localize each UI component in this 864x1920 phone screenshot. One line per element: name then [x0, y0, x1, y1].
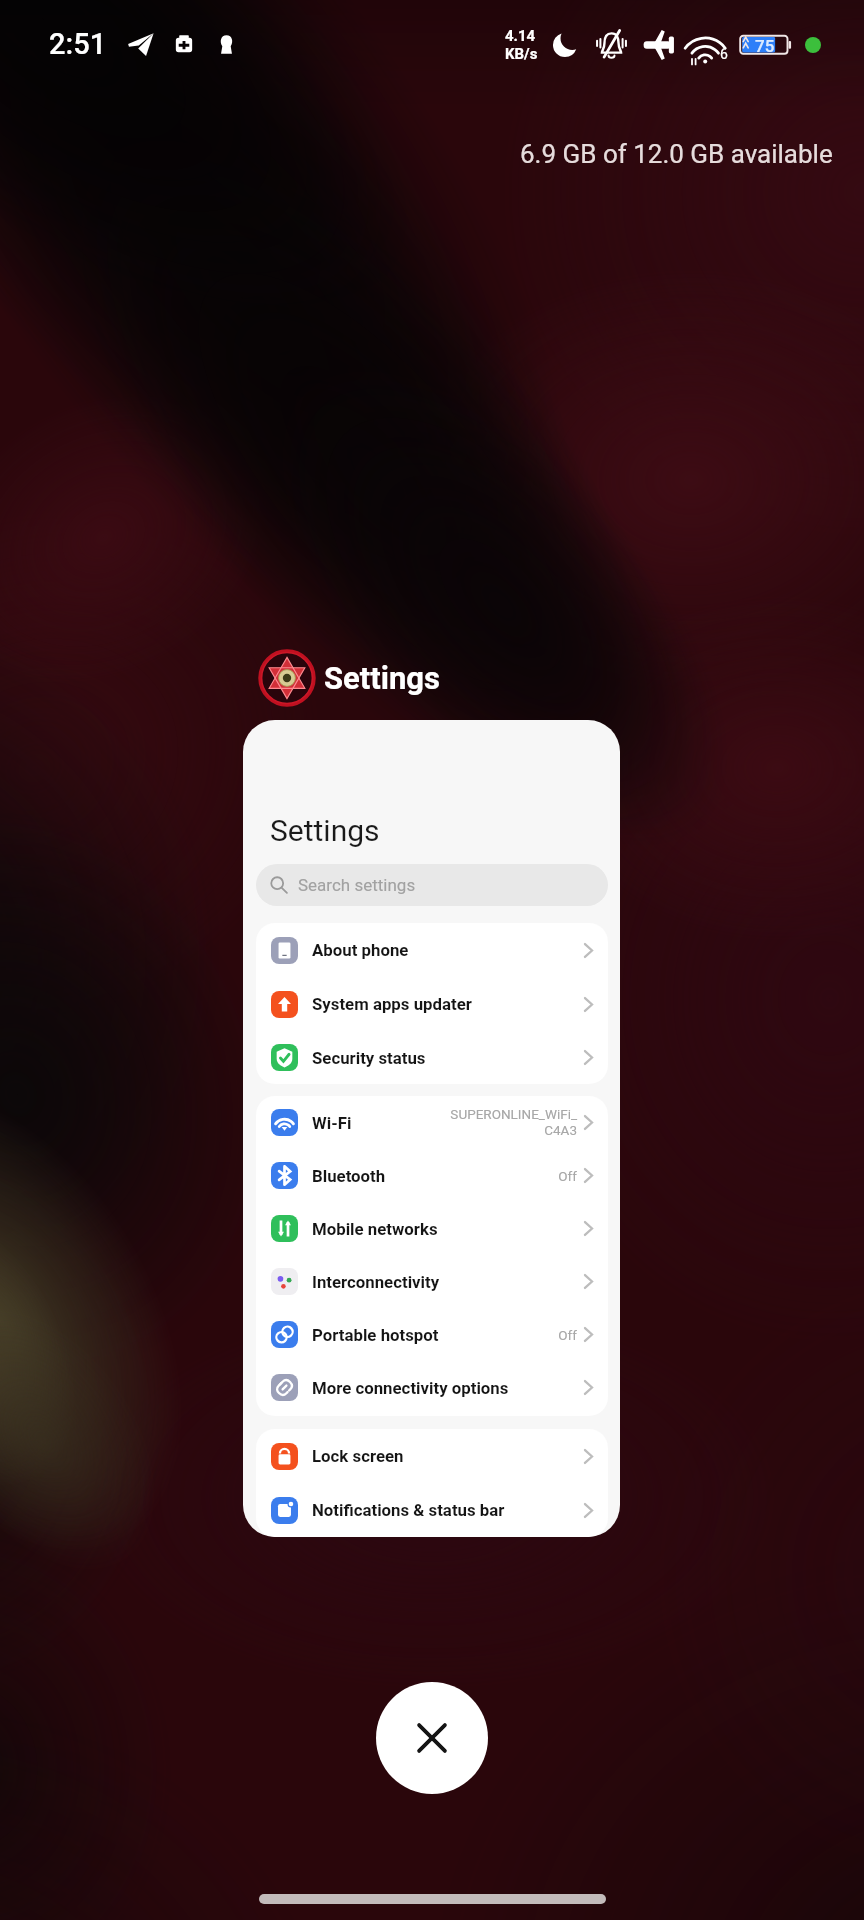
button[interactable]: Close all [376, 1682, 488, 1794]
staticText: Portable hotspot [312, 1325, 439, 1345]
staticText: 2:51 [49, 27, 107, 61]
staticText: Bluetooth [312, 1166, 386, 1186]
button[interactable]: About phone [256, 923, 608, 977]
button[interactable]: System apps updater [256, 977, 608, 1031]
staticText: Security status [312, 1048, 426, 1068]
button[interactable]: More connectivity options [256, 1361, 608, 1414]
button[interactable]: Wi-Fi [256, 1096, 608, 1149]
staticText: Lock screen [312, 1446, 404, 1466]
staticText: About phone [312, 940, 409, 960]
button[interactable]: Search settings [256, 864, 608, 906]
staticText: System apps updater [312, 994, 472, 1014]
staticText: Mobile networks [312, 1219, 438, 1239]
staticText: Notifications & status bar [312, 1500, 505, 1520]
staticText: Settings [324, 660, 441, 696]
staticText: More connectivity options [312, 1378, 509, 1398]
staticText: SUPERONLINE_WiFi_ C4A3 [450, 1106, 577, 1139]
button[interactable]: Lock screen [256, 1429, 608, 1483]
staticText: 6.9 GB of 12.0 GB available [520, 139, 833, 169]
staticText: Interconnectivity [312, 1272, 440, 1292]
staticText: Off [558, 1327, 577, 1343]
button[interactable]: Notifications & status bar [256, 1483, 608, 1537]
button[interactable]: Interconnectivity [256, 1255, 608, 1308]
staticText: KB/s [505, 45, 538, 63]
staticText: 4.14 [505, 27, 536, 45]
staticText: Settings [270, 813, 380, 848]
button[interactable]: Bluetooth [256, 1149, 608, 1202]
button[interactable]: Mobile networks [256, 1202, 608, 1255]
staticText: Wi-Fi [312, 1113, 352, 1133]
staticText: 6 [720, 46, 728, 62]
button[interactable]: Portable hotspot [256, 1308, 608, 1361]
button[interactable]: Security status [256, 1031, 608, 1084]
staticText: 75 [755, 36, 775, 56]
staticText: Off [558, 1168, 577, 1184]
staticText: Search settings [298, 875, 416, 895]
